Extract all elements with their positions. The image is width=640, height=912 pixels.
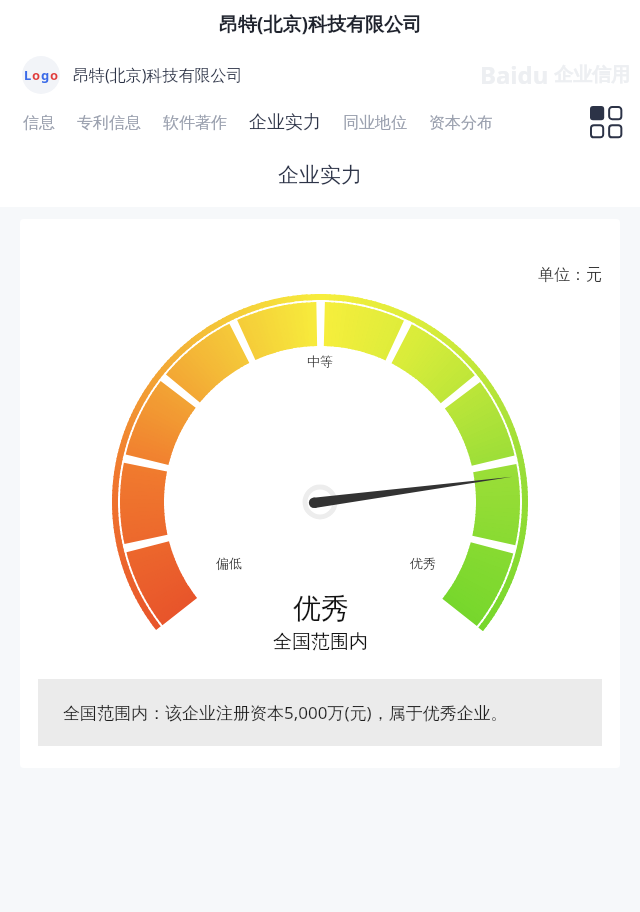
staticText: L (24, 66, 32, 84)
button[interactable]: 资本分布 (418, 102, 504, 143)
staticText: 优秀 (293, 591, 349, 626)
button[interactable]: 专利信息 (66, 102, 152, 143)
staticText: 单位：元 (538, 265, 602, 285)
staticText: 专利信息 (77, 113, 141, 133)
staticText: 企业信用 (554, 63, 630, 87)
button[interactable]: 软件著作 (152, 102, 238, 143)
staticText: 企业实力 (249, 111, 321, 134)
staticText: o (32, 66, 41, 84)
staticText: 中等 (307, 353, 333, 369)
staticText: 信息 (23, 113, 55, 133)
staticText: 昂特(北京)科技有限公司 (73, 64, 243, 86)
staticText: 软件著作 (163, 113, 227, 133)
staticText: 昂特(北京)科技有限公司 (219, 11, 422, 37)
button[interactable]: 企业实力 (238, 102, 332, 143)
button[interactable]: L (22, 56, 243, 94)
button[interactable]: 展开全部栏目 (584, 102, 628, 143)
staticText: 全国范围内：该企业注册资本5,000万(元)，属于优秀企业。 (63, 701, 508, 724)
staticText: 同业地位 (343, 113, 407, 133)
staticText: 资本分布 (429, 113, 493, 133)
staticText: Baidu (480, 58, 549, 91)
staticText: 全国范围内 (273, 630, 368, 654)
staticText: 企业实力 (278, 162, 362, 188)
staticText: o (50, 66, 59, 84)
staticText: 优秀 (410, 555, 436, 571)
button[interactable]: 信息 (12, 102, 66, 143)
button[interactable]: 同业地位 (332, 102, 418, 143)
staticText: 偏低 (216, 555, 242, 571)
staticText: g (41, 66, 50, 84)
